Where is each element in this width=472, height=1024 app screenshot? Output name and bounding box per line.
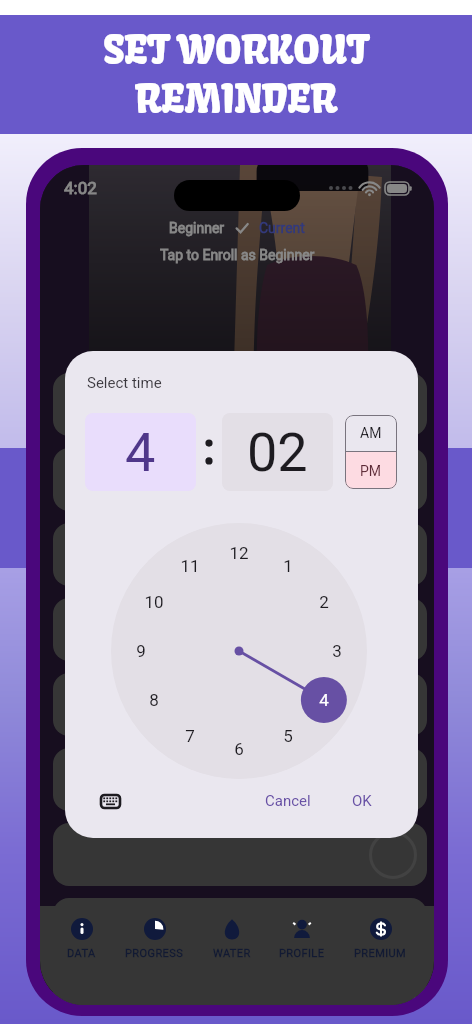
staticText: Current	[259, 220, 305, 236]
staticText: Select time	[87, 374, 162, 392]
staticText: 6	[234, 739, 244, 759]
button[interactable]: Switch to text input	[88, 779, 132, 823]
staticText: PM	[360, 463, 382, 479]
staticText: 11	[180, 556, 200, 576]
staticText: 10	[144, 592, 164, 612]
staticText: SET WORKOUT REMINDER	[103, 26, 369, 123]
staticText: 02	[247, 421, 308, 484]
staticText: 4	[319, 690, 329, 710]
staticText: AM	[360, 425, 382, 441]
staticText: 4	[125, 421, 156, 484]
staticText: 12	[229, 543, 249, 563]
staticText: 5	[283, 726, 293, 746]
staticText: 1	[283, 556, 293, 576]
staticText: 9	[136, 641, 146, 661]
staticText: 3	[332, 641, 342, 661]
staticText: Beginner	[169, 220, 225, 236]
staticText: OK	[352, 792, 372, 810]
button[interactable]: 4	[85, 413, 196, 491]
button[interactable]: AM	[345, 415, 397, 451]
staticText: PROGRESS	[125, 947, 184, 960]
staticText: DATA	[67, 947, 96, 960]
button[interactable]: 02	[222, 413, 333, 491]
button[interactable]: DATA	[65, 906, 98, 970]
button[interactable]: Cancel	[253, 779, 323, 823]
staticText: PROFILE	[279, 947, 325, 960]
button[interactable]: OK	[340, 779, 384, 823]
button[interactable]: WATER	[211, 906, 253, 970]
staticText: 4:02	[64, 178, 97, 198]
button[interactable]: PM	[345, 452, 397, 489]
staticText: 2	[319, 592, 329, 612]
staticText: PREMIUM	[354, 947, 407, 960]
staticText: Cancel	[265, 792, 311, 810]
staticText: 7	[185, 726, 195, 746]
button[interactable]: PREMIUM	[352, 906, 409, 970]
button[interactable]: PROFILE	[277, 906, 327, 970]
staticText: Tap to Enroll as Beginner	[160, 247, 315, 263]
staticText: 8	[149, 690, 159, 710]
staticText: WATER	[213, 947, 251, 960]
button[interactable]: PROGRESS	[123, 906, 186, 970]
